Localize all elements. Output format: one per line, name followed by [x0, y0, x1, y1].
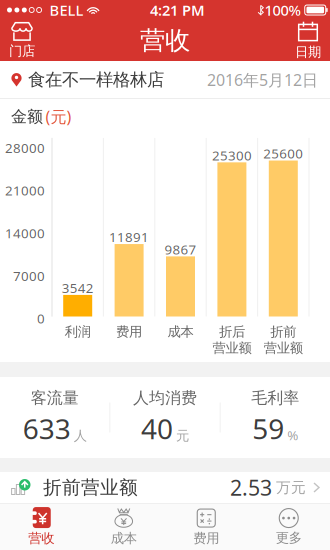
staticText: 毛利率 [251, 388, 299, 408]
button[interactable]: 日期 [286, 20, 330, 61]
staticText: 25300 [212, 146, 252, 164]
staticText: 食在不一样格林店 [28, 69, 164, 90]
staticText: 营收 [140, 25, 190, 56]
staticText: 40 [141, 410, 173, 447]
staticText: 14000 [5, 224, 45, 242]
staticText: 28000 [5, 139, 45, 157]
staticText: 万元 [272, 478, 306, 496]
button[interactable]: 营收 [0, 504, 82, 550]
staticText: 折后 [219, 323, 245, 340]
staticText: 费用 [193, 530, 219, 546]
button[interactable]: 门店 [0, 20, 44, 61]
button[interactable]: 折前营业额 [0, 472, 330, 503]
staticText: 59 [252, 410, 284, 447]
staticText: 金额 [11, 107, 43, 126]
staticText: 营业额 [212, 340, 251, 356]
staticText: 21000 [5, 182, 45, 199]
button[interactable]: 成本 [82, 504, 165, 550]
staticText: 门店 [9, 43, 35, 59]
staticText: 人 [74, 427, 87, 444]
staticText: 人均消费 [133, 388, 197, 408]
staticText: 2.53 [230, 473, 272, 502]
staticText: 成本 [111, 530, 137, 546]
staticText: 折前 [270, 323, 296, 340]
staticText: 日期 [295, 44, 321, 60]
staticText: 利润 [65, 323, 91, 340]
staticText: 3542 [62, 279, 94, 297]
staticText: 100% [264, 0, 300, 20]
staticText: 成本 [167, 323, 193, 340]
staticText: 客流量 [31, 388, 79, 408]
staticText: 11891 [109, 228, 149, 246]
staticText: 折前营业额 [31, 476, 138, 499]
staticText: (元) [45, 106, 71, 127]
staticText: 元 [176, 427, 189, 444]
staticText: 0 [37, 309, 45, 327]
staticText: 2016年5月12日 [207, 69, 318, 90]
staticText: 更多 [276, 530, 302, 546]
staticText: 营收 [28, 530, 54, 546]
staticText: 7000 [13, 267, 45, 285]
staticText: 4:21 PM [150, 0, 205, 20]
staticText: 营业额 [264, 340, 303, 356]
staticText: 9867 [164, 240, 196, 258]
staticText: BELL [42, 0, 84, 20]
button[interactable]: 更多 [247, 504, 330, 550]
button[interactable]: 费用 [165, 504, 247, 550]
staticText: 费用 [116, 323, 142, 340]
staticText: 25600 [263, 144, 303, 162]
staticText: 633 [23, 410, 71, 447]
staticText: % [287, 426, 298, 444]
